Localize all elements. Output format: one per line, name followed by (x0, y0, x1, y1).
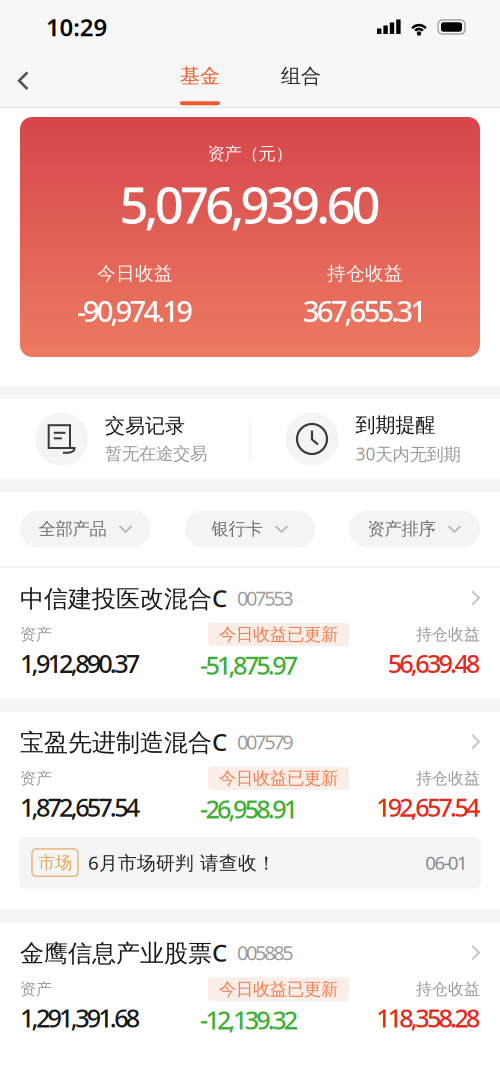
staticText: -51,875.97 (200, 648, 298, 682)
staticText: 资产 (20, 768, 52, 788)
button[interactable]: 到期提醒 (250, 399, 500, 479)
staticText: 资产排序 (367, 518, 435, 540)
staticText: 宝盈先进制造混合C (20, 726, 227, 758)
staticText: 30天内无到期 (355, 442, 460, 465)
staticText: 持仓收益 (416, 979, 480, 999)
staticText: 192,657.54 (376, 790, 480, 824)
staticText: 6月市场研判 请查收！ (88, 850, 276, 875)
button[interactable]: 金鹰信息产业股票C (0, 923, 500, 1053)
button[interactable]: 银行卡 (184, 510, 315, 547)
staticText: -90,974.19 (77, 291, 193, 330)
staticText: 资产（元） (207, 143, 292, 164)
staticText: 06-01 (425, 850, 468, 875)
staticText: 金鹰信息产业股票C (20, 937, 227, 968)
staticText: 今日收益已更新 (219, 978, 338, 1000)
button[interactable]: 中信建投医改混合C (0, 568, 500, 699)
staticText: 5,076,939.60 (119, 170, 381, 238)
staticText: 今日收益 (97, 262, 173, 285)
staticText: 持仓收益 (416, 768, 480, 788)
staticText: 1,872,657.54 (20, 790, 140, 824)
staticText: 交易记录 (105, 414, 185, 438)
staticText: 118,358.28 (376, 1001, 480, 1035)
staticText: 组合 (281, 64, 321, 88)
staticText: 今日收益已更新 (219, 624, 338, 645)
staticText: 到期提醒 (355, 413, 435, 437)
staticText: 持仓收益 (327, 262, 403, 285)
staticText: 持仓收益 (416, 625, 480, 644)
button[interactable]: 基金 (160, 56, 240, 105)
staticText: 市场 (38, 852, 72, 873)
button[interactable]: 交易记录 (0, 399, 249, 479)
staticText: 10:29 (46, 11, 107, 43)
button[interactable]: 市场 (0, 837, 500, 910)
staticText: 1,291,391.68 (20, 1001, 140, 1035)
staticText: 005885 (237, 939, 293, 966)
button[interactable]: 组合 (261, 56, 341, 105)
staticText: 今日收益已更新 (219, 768, 338, 789)
staticText: 56,639.48 (388, 646, 480, 680)
button[interactable]: 宝盈先进制造混合C (0, 712, 500, 837)
staticText: -26,958.91 (200, 792, 298, 826)
staticText: 资产 (20, 625, 52, 644)
staticText: -12,139.32 (200, 1003, 298, 1036)
staticText: 资产 (20, 979, 52, 999)
staticText: 暂无在途交易 (105, 443, 207, 464)
staticText: 007553 (237, 585, 293, 611)
staticText: 银行卡 (211, 518, 262, 540)
staticText: 全部产品 (38, 518, 106, 540)
button[interactable]: 全部产品 (20, 510, 151, 547)
staticText: 367,655.31 (303, 291, 427, 330)
staticText: 007579 (237, 728, 293, 755)
staticText: 1,912,890.37 (20, 646, 140, 680)
staticText: 中信建投医改混合C (20, 582, 227, 614)
staticText: 基金 (180, 64, 220, 88)
button[interactable]: 资产排序 (349, 510, 480, 547)
button[interactable]: Back (0, 58, 45, 103)
